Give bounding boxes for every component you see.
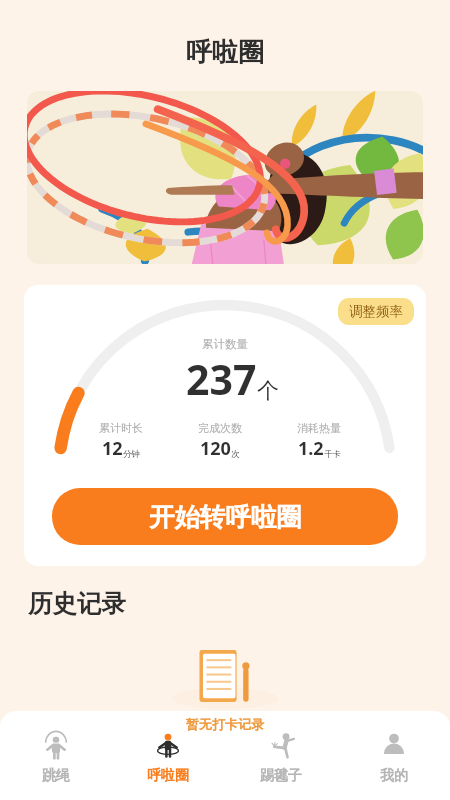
staticText: 呼啦圈 bbox=[186, 36, 264, 69]
button[interactable]: Hula hoop bbox=[112, 725, 224, 787]
staticText: 120 bbox=[200, 436, 231, 461]
staticText: 累计数量 bbox=[202, 337, 248, 351]
staticText: 呼啦圈 bbox=[147, 767, 189, 785]
button[interactable]: 调整频率 bbox=[338, 298, 414, 325]
staticText: 12 bbox=[102, 436, 123, 461]
staticText: 暂无打卡记录 bbox=[186, 716, 264, 732]
button[interactable]: Profile bbox=[337, 725, 450, 787]
button[interactable]: Shuttlecock bbox=[224, 725, 337, 787]
button[interactable]: Jump rope bbox=[0, 725, 112, 787]
staticText: 分钟 bbox=[123, 449, 140, 460]
staticText: 跳绳 bbox=[42, 767, 70, 785]
staticText: 累计时长 bbox=[99, 421, 143, 435]
staticText: 踢毽子 bbox=[260, 767, 302, 785]
staticText: 个 bbox=[257, 377, 279, 405]
staticText: 开始转呼啦圈 bbox=[149, 501, 302, 533]
staticText: 1.2 bbox=[298, 436, 324, 461]
staticText: 我的 bbox=[380, 767, 408, 785]
button[interactable]: 开始转呼啦圈 bbox=[52, 488, 398, 545]
staticText: 调整频率 bbox=[349, 303, 403, 320]
staticText: 千卡 bbox=[324, 449, 341, 460]
staticText: 完成次数 bbox=[198, 421, 242, 435]
staticText: 历史记录 bbox=[28, 588, 126, 619]
staticText: 消耗热量 bbox=[297, 421, 341, 435]
staticText: 次 bbox=[231, 449, 240, 460]
staticText: 237 bbox=[186, 351, 257, 407]
